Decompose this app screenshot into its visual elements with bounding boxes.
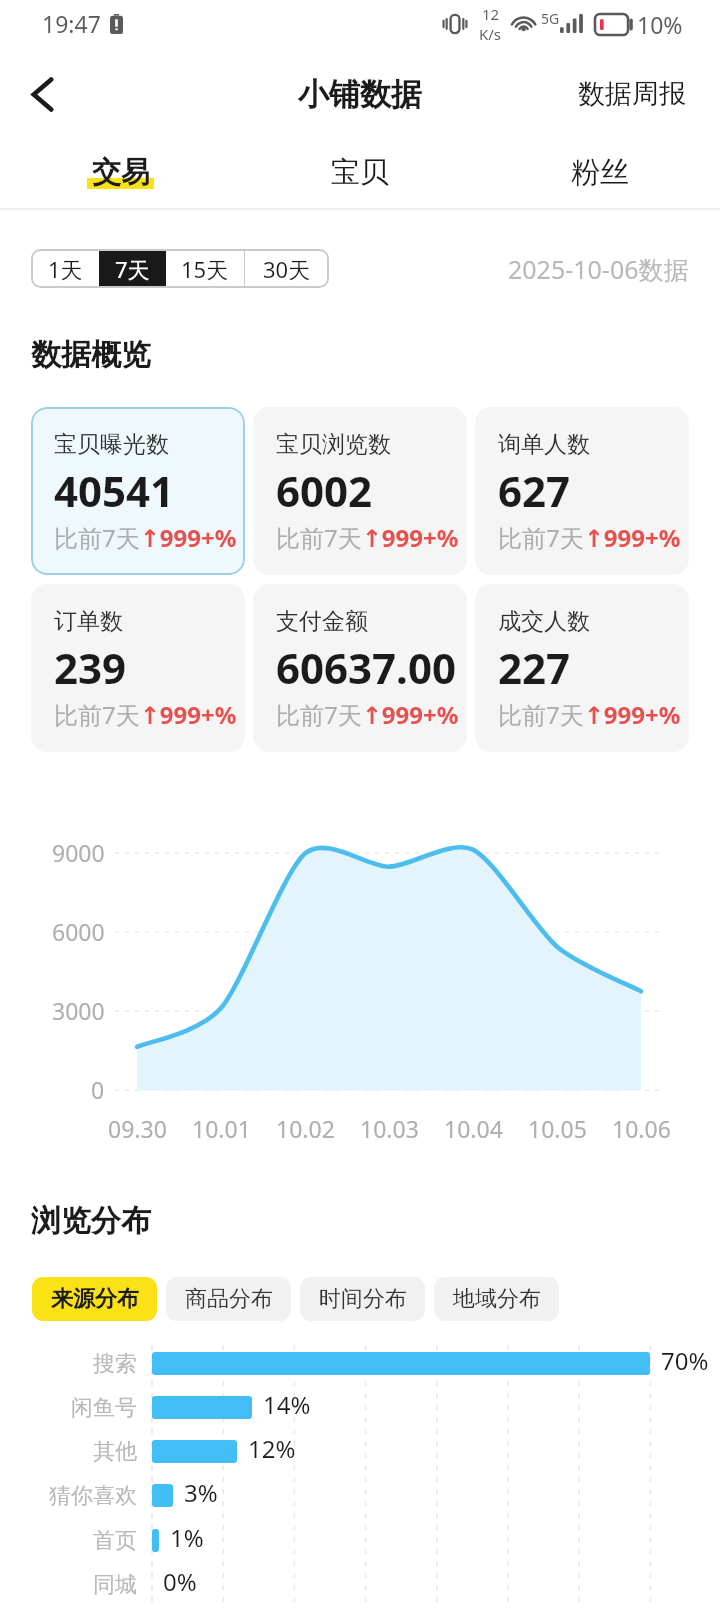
staticText: 数据周报: [578, 77, 686, 111]
staticText: 9000: [52, 837, 105, 868]
button[interactable]: 1天: [31, 249, 99, 288]
button[interactable]: 地域分布: [434, 1277, 559, 1321]
button[interactable]: 其他: [0, 1430, 720, 1473]
staticText: 浏览分布: [31, 1202, 151, 1240]
button[interactable]: 时间分布: [300, 1277, 425, 1321]
staticText: 12: [482, 4, 500, 24]
button[interactable]: 粉丝: [480, 133, 720, 209]
staticText: 订单数: [54, 607, 123, 636]
staticText: 10.01: [192, 1113, 251, 1144]
staticText: 6002: [276, 462, 373, 519]
button[interactable]: 猜你喜欢: [0, 1474, 720, 1517]
staticText: 5G: [541, 9, 560, 28]
staticText: 搜索: [93, 1350, 137, 1378]
button[interactable]: 宝贝: [240, 133, 480, 209]
staticText: 1%: [170, 1521, 204, 1554]
staticText: 其他: [93, 1438, 137, 1466]
staticText: 宝贝浏览数: [276, 430, 391, 459]
staticText: 14%: [263, 1388, 311, 1421]
staticText: 239: [54, 639, 127, 696]
button[interactable]: 成交人数: [475, 584, 689, 752]
staticText: 宝贝: [331, 154, 389, 191]
staticText: 商品分布: [185, 1285, 273, 1313]
staticText: 询单人数: [498, 430, 590, 459]
staticText: 09.30: [108, 1113, 167, 1144]
staticText: 227: [498, 639, 571, 696]
staticText: 同城: [93, 1571, 137, 1599]
staticText: 0%: [163, 1565, 197, 1598]
staticText: 时间分布: [319, 1285, 407, 1313]
button[interactable]: 同城: [0, 1563, 720, 1606]
button[interactable]: 7天: [99, 249, 166, 288]
staticText: 闲鱼号: [71, 1394, 137, 1422]
button[interactable]: 搜索: [0, 1342, 720, 1385]
staticText: K/s: [479, 24, 502, 44]
staticText: 60637.00: [276, 639, 456, 696]
staticText: 3000: [52, 995, 105, 1026]
staticText: 比前7天↑999+%: [54, 698, 237, 731]
button[interactable]: 来源分布: [32, 1277, 157, 1321]
staticText: 30天: [263, 254, 311, 284]
staticText: 交易: [92, 154, 150, 191]
button[interactable]: 30天: [245, 249, 329, 288]
button[interactable]: 闲鱼号: [0, 1386, 720, 1429]
staticText: 7天: [115, 254, 150, 284]
staticText: 15天: [181, 254, 229, 284]
staticText: 1天: [48, 254, 83, 284]
staticText: 19:47: [42, 8, 101, 39]
staticText: 来源分布: [51, 1285, 139, 1313]
button[interactable]: 首页: [0, 1519, 720, 1562]
staticText: 数据概览: [31, 336, 151, 374]
staticText: 10.02: [276, 1113, 335, 1144]
staticText: 0: [91, 1074, 105, 1105]
staticText: 猜你喜欢: [49, 1482, 137, 1510]
staticText: 支付金额: [276, 607, 368, 636]
button[interactable]: 支付金额: [253, 584, 467, 752]
staticText: 比前7天↑999+%: [498, 698, 681, 731]
button[interactable]: 15天: [166, 249, 244, 288]
staticText: 6000: [52, 916, 105, 947]
button[interactable]: 宝贝曝光数: [31, 407, 245, 575]
staticText: 70%: [661, 1344, 709, 1377]
staticText: 宝贝曝光数: [54, 430, 169, 459]
button[interactable]: 交易: [0, 133, 240, 209]
button[interactable]: 数据周报: [578, 77, 686, 111]
staticText: 10.03: [360, 1113, 419, 1144]
button[interactable]: 订单数: [31, 584, 245, 752]
button[interactable]: 商品分布: [166, 1277, 291, 1321]
staticText: 比前7天↑999+%: [54, 521, 237, 554]
button[interactable]: Back: [14, 66, 70, 122]
staticText: 10.06: [612, 1113, 671, 1144]
staticText: 10.04: [444, 1113, 503, 1144]
staticText: 小铺数据: [298, 75, 422, 114]
staticText: 10%: [637, 9, 683, 40]
staticText: 627: [498, 462, 571, 519]
staticText: 首页: [93, 1527, 137, 1555]
staticText: 成交人数: [498, 607, 590, 636]
button[interactable]: 宝贝浏览数: [253, 407, 467, 575]
button[interactable]: 询单人数: [475, 407, 689, 575]
staticText: 比前7天↑999+%: [276, 698, 459, 731]
staticText: 3%: [184, 1476, 218, 1509]
staticText: 比前7天↑999+%: [276, 521, 459, 554]
staticText: 10.05: [528, 1113, 587, 1144]
staticText: 40541: [54, 462, 175, 519]
staticText: 2025-10-06数据: [508, 252, 689, 286]
staticText: 12%: [248, 1432, 296, 1465]
staticText: 地域分布: [453, 1285, 541, 1313]
staticText: 比前7天↑999+%: [498, 521, 681, 554]
staticText: 粉丝: [571, 154, 629, 191]
